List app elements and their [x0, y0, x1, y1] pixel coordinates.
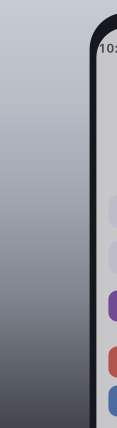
button[interactable]: Travel [100, 346, 117, 377]
button[interactable]: Reading [100, 290, 117, 321]
staticText: 10:09 [98, 39, 117, 56]
button[interactable]: Work [100, 385, 117, 416]
button[interactable]: Favourites [100, 240, 117, 274]
button[interactable]: New Folder [100, 194, 117, 228]
